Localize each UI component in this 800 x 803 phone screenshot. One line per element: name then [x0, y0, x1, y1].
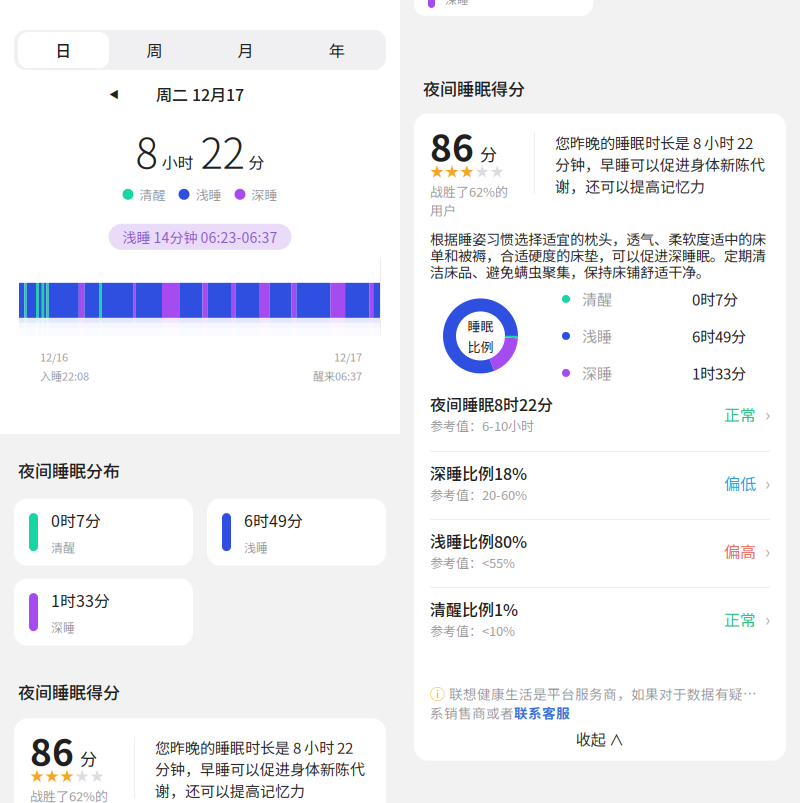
staticText: 22 [200, 120, 244, 181]
staticText: 浅睡比例80% [430, 529, 527, 553]
staticText: 根据睡姿习惯选择适宜的枕头，透气、柔软度适中的床单和被褥，合适硬度的床垫，可以促… [430, 228, 766, 282]
staticText: ★ [490, 160, 504, 181]
staticText: 系销售商或者 [430, 703, 514, 722]
staticText: ★ [475, 160, 489, 181]
staticText: ⓘ [430, 683, 445, 704]
staticText: 战胜了62%的 [30, 786, 108, 803]
staticText: ★ [460, 160, 474, 181]
staticText: 深睡比例18% [430, 461, 527, 485]
staticText: 睡眠 [467, 316, 493, 335]
staticText: › [765, 471, 770, 495]
button[interactable]: 日 [18, 32, 109, 68]
staticText: 0时7分 [51, 508, 101, 531]
staticText: 参考值：6-10小时 [430, 416, 534, 435]
staticText: 86 [430, 118, 474, 172]
button[interactable]: 浅睡比例80% [430, 519, 770, 587]
staticText: 分 [80, 746, 97, 771]
staticText: 12/16 [40, 349, 68, 365]
staticText: 夜间睡眠分布 [18, 458, 120, 483]
staticText: › [765, 402, 770, 426]
staticText: › [765, 607, 770, 631]
button[interactable]: 清醒比例1% [430, 587, 770, 655]
staticText: 月 [237, 38, 253, 62]
button[interactable]: 年 [291, 32, 382, 68]
staticText: 您昨晚的睡眠时长是 8 小时 22 分钟，早睡可以促进身体新陈代谢，还可以提高记… [155, 736, 365, 801]
staticText: 小时 [161, 150, 193, 173]
staticText: 战胜了62%的 [430, 182, 508, 200]
staticText: 入睡22:08 [40, 368, 89, 384]
staticText: 深睡 [51, 618, 75, 636]
button[interactable]: 收起 ∧ [430, 721, 770, 763]
staticText: 1时33分 [692, 362, 746, 384]
staticText: 深睡 [251, 185, 277, 204]
staticText: 浅睡 [244, 538, 268, 556]
staticText: 浅睡 14分钟 06:23-06:37 [122, 227, 277, 247]
staticText: ★ [90, 765, 104, 785]
staticText: 参考值：20-60% [430, 485, 527, 504]
staticText: ★ [75, 765, 89, 785]
staticText: 参考值：<55% [430, 553, 515, 572]
button[interactable]: 夜间睡眠8时22分 [430, 383, 770, 451]
staticText: 浅睡 [582, 325, 612, 347]
staticText: 联想健康生活是平台服务商，如果对于数据有疑议，请联 [449, 684, 770, 703]
staticText: 周二 12月17 [156, 82, 244, 106]
button[interactable]: 联系客服 [514, 703, 570, 722]
staticText: 12/17 [334, 349, 362, 365]
staticText: 收起 ∧ [576, 728, 624, 750]
staticText: › [765, 539, 770, 563]
staticText: ★ [45, 765, 59, 785]
staticText: 夜间睡眠得分 [423, 76, 525, 101]
staticText: 6时49分 [244, 508, 303, 531]
staticText: ★ [430, 160, 444, 181]
staticText: 年 [328, 38, 344, 62]
staticText: 深睡 [445, 0, 469, 8]
staticText: ★ [30, 765, 44, 785]
staticText: 比例 [467, 337, 493, 356]
button[interactable]: 深睡比例18% [430, 451, 770, 519]
staticText: 清醒 [51, 538, 75, 556]
staticText: 偏低 [724, 471, 756, 495]
staticText: 参考值：<10% [430, 621, 515, 640]
staticText: 8 [135, 120, 157, 181]
staticText: 夜间睡眠8时22分 [430, 392, 553, 416]
staticText: 1时33分 [51, 588, 110, 611]
staticText: 浅睡 [195, 185, 221, 204]
staticText: 6时49分 [692, 325, 746, 347]
staticText: 您昨晚的睡眠时长是 8 小时 22 分钟，早睡可以促进身体新陈代谢，还可以提高记… [555, 132, 765, 197]
staticText: 用户 [430, 200, 456, 219]
staticText: 周 [146, 38, 162, 62]
staticText: 0时7分 [692, 288, 738, 310]
staticText: 醒来06:37 [313, 368, 362, 384]
staticText: 86 [30, 723, 74, 776]
button[interactable]: 周 [109, 32, 200, 68]
staticText: 清醒 [582, 288, 612, 310]
button[interactable]: 月 [200, 32, 291, 68]
staticText: 分 [480, 141, 497, 166]
staticText: 偏高 [724, 539, 756, 563]
staticText: 夜间睡眠得分 [18, 680, 120, 704]
staticText: 联系客服 [514, 703, 570, 722]
staticText: 清醒 [139, 185, 165, 204]
button[interactable]: 上一天 [100, 83, 128, 105]
staticText: 深睡 [582, 362, 612, 384]
staticText: 日 [55, 38, 71, 62]
staticText: 正常 [724, 402, 756, 426]
staticText: 分 [248, 150, 264, 173]
staticText: ★ [445, 160, 459, 181]
staticText: ◀ [109, 87, 119, 101]
staticText: 清醒比例1% [430, 597, 518, 621]
staticText: ★ [60, 765, 74, 785]
staticText: 正常 [724, 607, 756, 631]
